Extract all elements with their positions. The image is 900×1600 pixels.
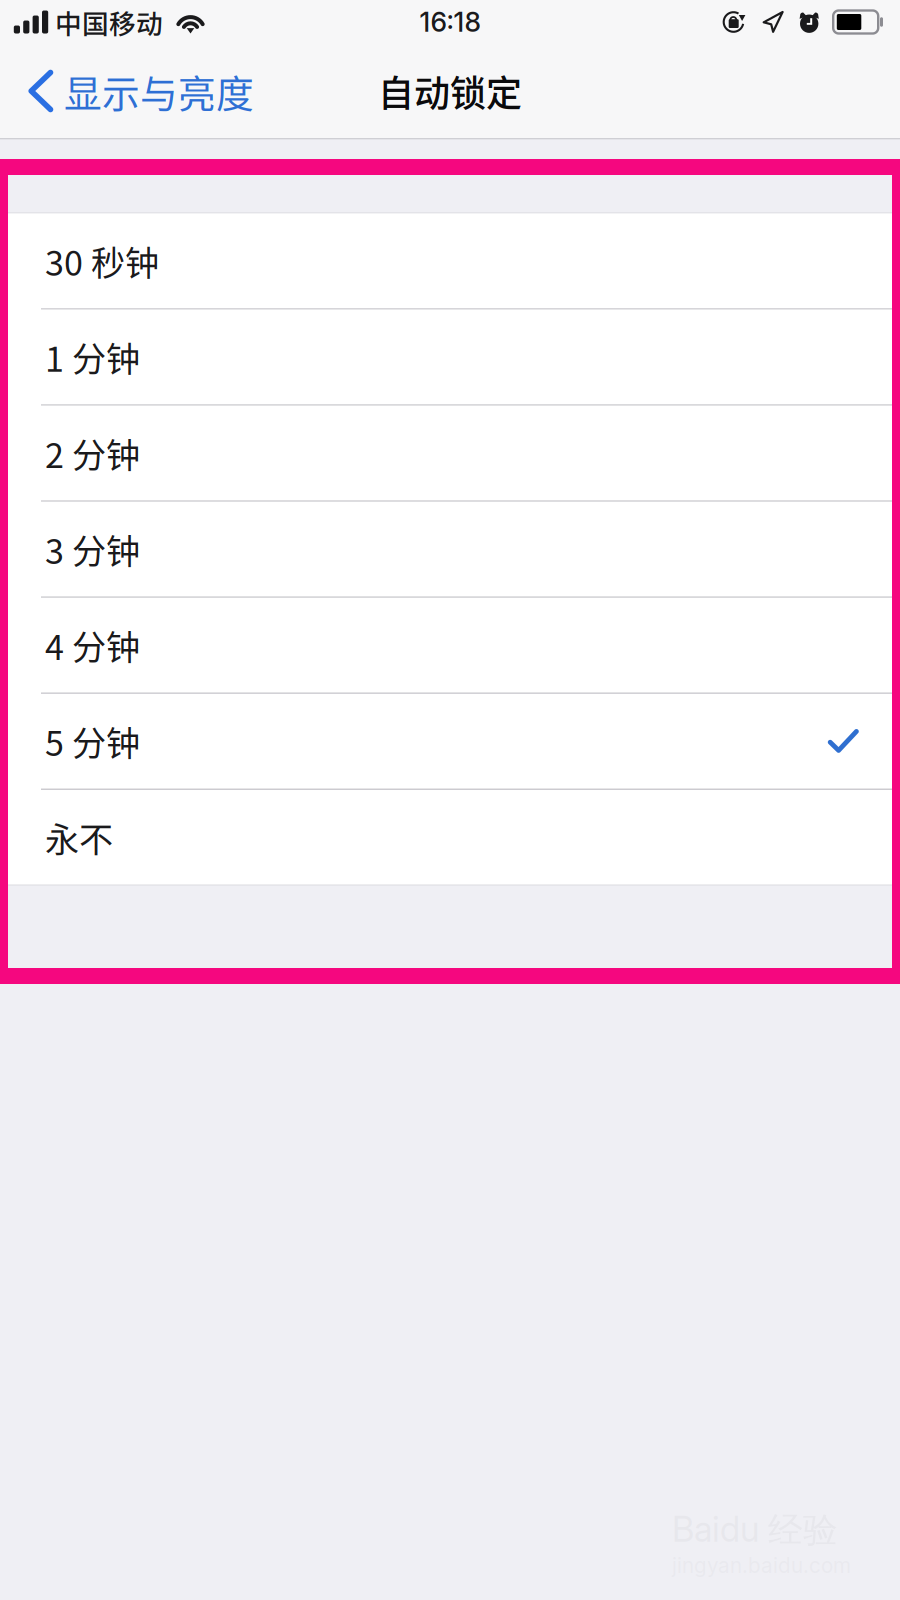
- button[interactable]: 5 分钟: [0, 694, 900, 789]
- button[interactable]: 4 分钟: [0, 598, 900, 692]
- button[interactable]: 1 分钟: [0, 310, 900, 404]
- staticText: 3 分钟: [45, 524, 140, 574]
- staticText: 30 秒钟: [45, 236, 159, 286]
- button[interactable]: 2 分钟: [0, 406, 900, 500]
- staticText: 2 分钟: [45, 428, 140, 478]
- staticText: 1 分钟: [45, 332, 140, 382]
- button[interactable]: 显示与亮度: [0, 50, 268, 132]
- staticText: 4 分钟: [45, 620, 140, 670]
- staticText: 显示与亮度: [64, 64, 254, 118]
- staticText: 中国移动: [55, 3, 163, 41]
- staticText: 自动锁定: [378, 65, 522, 117]
- button[interactable]: 3 分钟: [0, 502, 900, 596]
- button[interactable]: 30 秒钟: [0, 214, 900, 308]
- staticText: 5 分钟: [45, 716, 140, 766]
- button[interactable]: 永不: [0, 790, 900, 885]
- staticText: 16:18: [419, 6, 480, 38]
- staticText: 永不: [45, 813, 113, 862]
